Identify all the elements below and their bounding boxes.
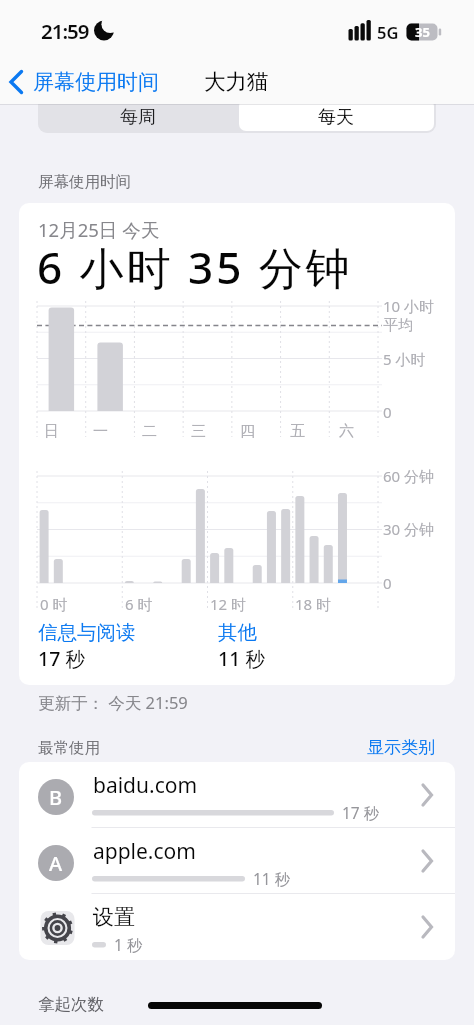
staticText: 5 小时 bbox=[383, 349, 426, 369]
staticText: 日 bbox=[44, 422, 59, 441]
staticText: 屏幕使用时间 bbox=[33, 69, 159, 95]
staticText: 平均 bbox=[383, 316, 413, 335]
staticText: 1 秒 bbox=[114, 934, 143, 955]
staticText: 0 时 bbox=[40, 594, 68, 614]
button[interactable] bbox=[0, 60, 175, 104]
staticText: 六 bbox=[339, 422, 354, 441]
staticText: 5G bbox=[377, 21, 399, 43]
button[interactable] bbox=[38, 620, 188, 646]
staticText: 12 时 bbox=[210, 594, 247, 614]
staticText: 0 bbox=[383, 573, 392, 593]
staticText: 拿起次数 bbox=[38, 994, 104, 1015]
button[interactable] bbox=[335, 734, 435, 760]
staticText: 6 小时 35 分钟 bbox=[37, 237, 353, 297]
button[interactable] bbox=[38, 97, 436, 133]
staticText: 二 bbox=[142, 422, 157, 441]
staticText: 最常使用 bbox=[38, 738, 100, 758]
staticText: 其他 bbox=[218, 620, 257, 645]
staticText: 11 秒 bbox=[218, 645, 265, 672]
staticText: 18 时 bbox=[295, 594, 332, 614]
button[interactable] bbox=[19, 762, 455, 828]
staticText: 每周 bbox=[120, 106, 156, 129]
button[interactable] bbox=[218, 620, 298, 646]
staticText: B bbox=[49, 784, 63, 811]
staticText: 0 bbox=[383, 402, 392, 422]
staticText: 10 小时 bbox=[383, 296, 435, 316]
staticText: 12月25日 今天 bbox=[38, 217, 160, 242]
staticText: 信息与阅读 bbox=[38, 620, 136, 645]
button[interactable] bbox=[19, 894, 455, 960]
staticText: 17 秒 bbox=[38, 645, 85, 672]
staticText: 三 bbox=[191, 422, 206, 441]
staticText: 30 分钟 bbox=[383, 519, 435, 539]
staticText: baidu.com bbox=[93, 771, 198, 800]
staticText: 35 bbox=[415, 23, 430, 41]
staticText: 17 秒 bbox=[342, 802, 380, 823]
staticText: A bbox=[49, 850, 63, 877]
staticText: 6 时 bbox=[125, 594, 153, 614]
staticText: 21:59 bbox=[41, 17, 89, 45]
staticText: 四 bbox=[240, 422, 255, 441]
button[interactable] bbox=[239, 99, 434, 131]
staticText: 设置 bbox=[93, 904, 135, 930]
staticText: 大力猫 bbox=[204, 68, 269, 95]
staticText: 显示类别 bbox=[367, 737, 435, 758]
staticText: 一 bbox=[93, 422, 108, 441]
staticText: 60 分钟 bbox=[383, 466, 435, 486]
staticText: apple.com bbox=[93, 837, 196, 866]
staticText: 每天 bbox=[318, 106, 354, 129]
staticText: 更新于： 今天 21:59 bbox=[38, 691, 188, 714]
staticText: 屏幕使用时间 bbox=[38, 172, 131, 192]
staticText: 五 bbox=[290, 422, 305, 441]
staticText: 11 秒 bbox=[253, 868, 291, 889]
button[interactable] bbox=[19, 828, 455, 894]
